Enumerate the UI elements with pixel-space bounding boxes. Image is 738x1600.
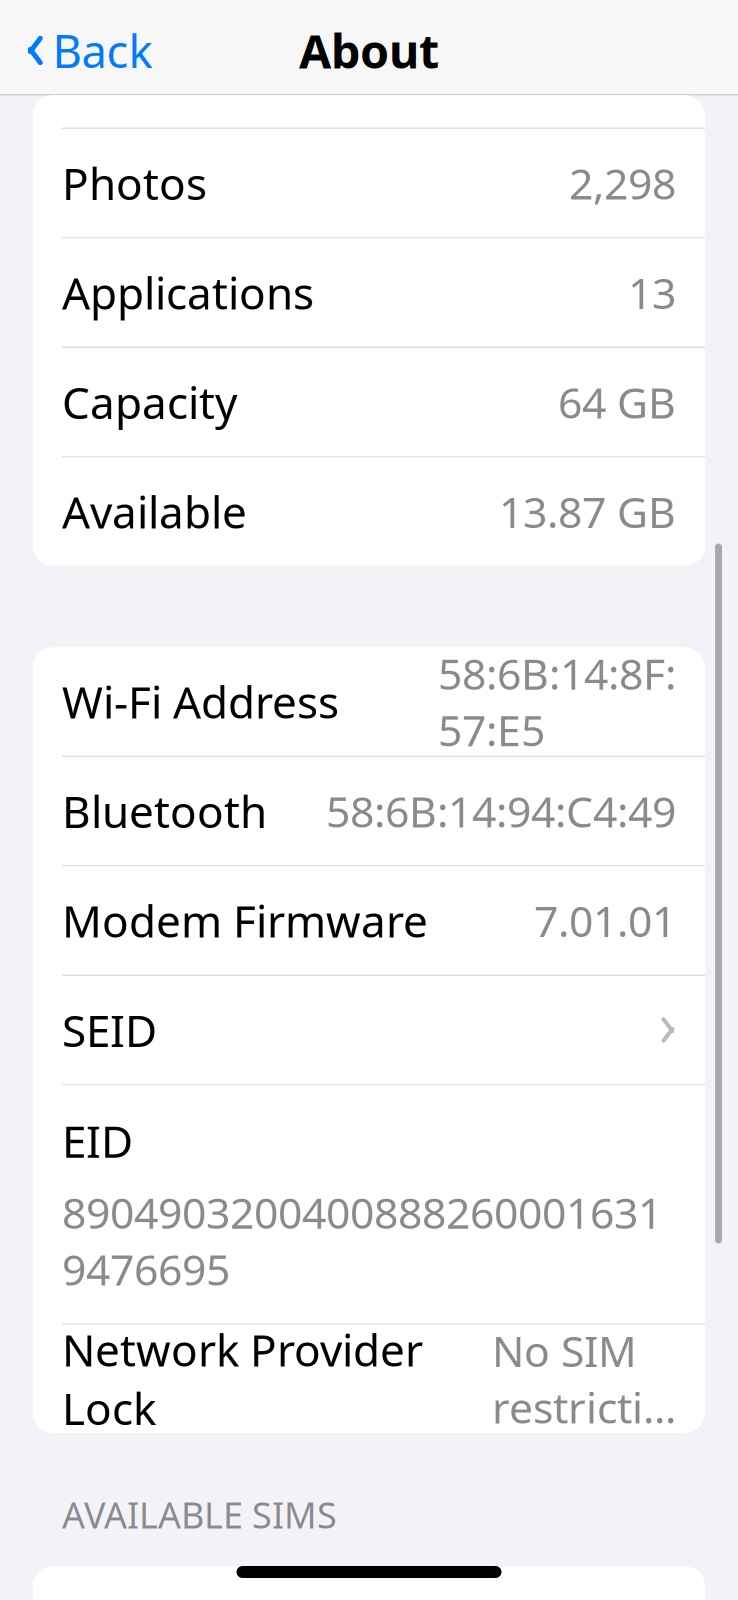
staticText: Capacity (62, 373, 237, 431)
staticText: Bluetooth (62, 782, 267, 840)
staticText: 13 (628, 264, 676, 321)
staticText: Applications (62, 263, 314, 322)
staticText: Back (53, 20, 153, 81)
staticText: 89049032004008882600016319476695 (62, 1184, 662, 1297)
staticText: 58:6B:14:8F:57:E5 (438, 645, 676, 758)
button[interactable]: Bluetooth (33, 757, 705, 865)
staticText: 2,298 (569, 155, 676, 211)
staticText: AVAILABLE SIMS (62, 1491, 337, 1538)
button[interactable]: Available (33, 457, 705, 565)
button[interactable]: Back (8, 10, 171, 91)
staticText: EID (62, 1111, 133, 1170)
staticText: Modem Firmware (62, 891, 428, 950)
staticText: 7.01.01 (534, 892, 676, 949)
staticText: 64 GB (558, 374, 676, 430)
staticText: No SIM restricti... (492, 1322, 676, 1435)
button[interactable]: EID (33, 1085, 705, 1323)
staticText: SEID (62, 1001, 157, 1059)
staticText: Wi-Fi Address (62, 672, 339, 731)
staticText: Available (62, 482, 247, 541)
button[interactable]: Capacity (33, 348, 705, 456)
staticText: 13.87 GB (499, 483, 676, 540)
button[interactable]: Photos (33, 129, 705, 237)
button[interactable]: SEID (33, 976, 705, 1084)
button[interactable]: Modem Firmware (33, 866, 705, 974)
staticText: Photos (62, 154, 207, 212)
button[interactable]: IMEI (33, 1566, 705, 1600)
staticText: About (299, 19, 439, 81)
button[interactable]: Applications (33, 238, 705, 346)
button[interactable]: Network Provider Lock (33, 1325, 705, 1433)
staticText: Network Provider Lock (62, 1320, 423, 1437)
staticText: 58:6B:14:94:C4:49 (326, 783, 676, 839)
button[interactable]: Wi-Fi Address (33, 647, 705, 755)
